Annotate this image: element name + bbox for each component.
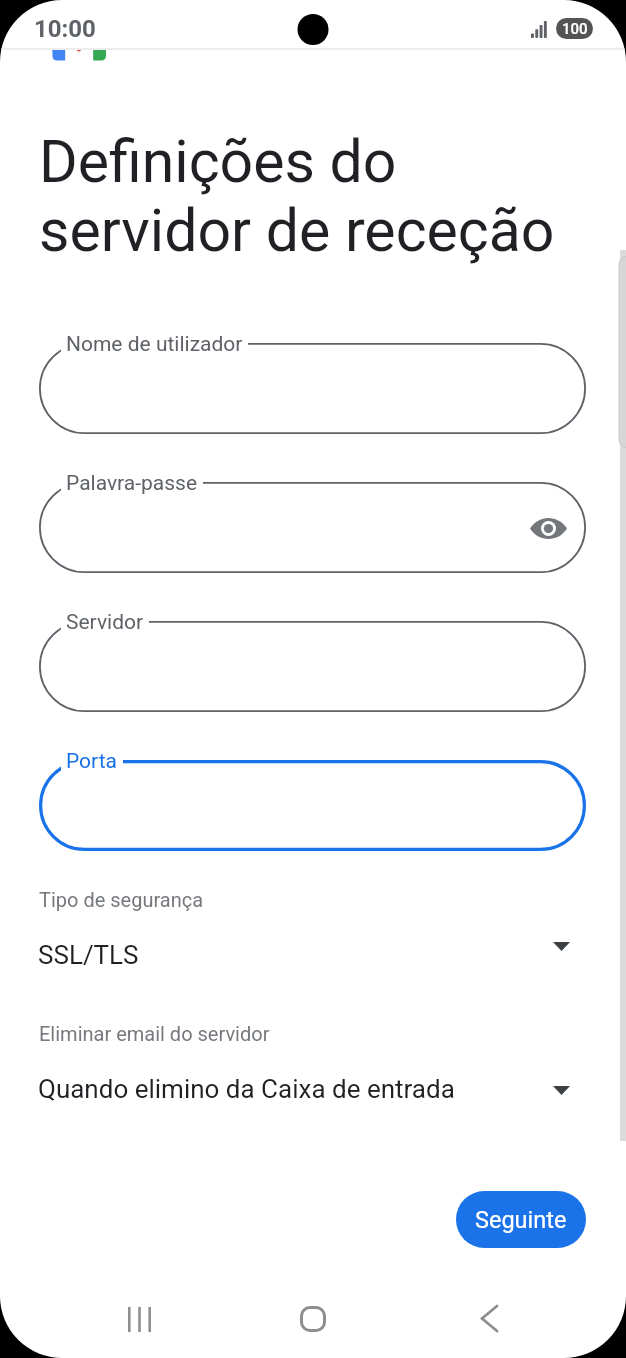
staticText: 100 bbox=[562, 20, 588, 38]
staticText: Definições do servidor de receção bbox=[39, 127, 555, 266]
staticText: Nome de utilizador bbox=[66, 332, 243, 357]
staticText: 10:00 bbox=[34, 15, 96, 43]
staticText: Porta bbox=[66, 749, 118, 774]
staticText: Quando elimino da Caixa de entrada bbox=[38, 1074, 455, 1104]
button[interactable]: Tipo de segurança bbox=[0, 888, 626, 988]
button[interactable]: Nome de utilizador bbox=[39, 343, 586, 434]
button[interactable]: Servidor bbox=[39, 621, 586, 712]
button[interactable]: Mostrar palavra-passe bbox=[524, 504, 572, 552]
button[interactable]: Porta bbox=[39, 760, 586, 851]
button[interactable]: Back bbox=[454, 1283, 524, 1353]
button[interactable]: Palavra-passe bbox=[39, 482, 586, 573]
staticText: SSL/TLS bbox=[38, 940, 139, 970]
button[interactable]: Recents bbox=[104, 1284, 174, 1354]
staticText: Tipo de segurança bbox=[39, 888, 204, 911]
staticText: Servidor bbox=[66, 610, 144, 635]
staticText: Eliminar email do servidor bbox=[39, 1022, 270, 1045]
button[interactable]: Seguinte bbox=[456, 1191, 586, 1248]
button[interactable]: Eliminar email do servidor bbox=[0, 1022, 626, 1122]
staticText: Palavra-passe bbox=[66, 471, 198, 496]
button[interactable]: Home bbox=[278, 1284, 348, 1354]
staticText: Seguinte bbox=[475, 1206, 567, 1234]
